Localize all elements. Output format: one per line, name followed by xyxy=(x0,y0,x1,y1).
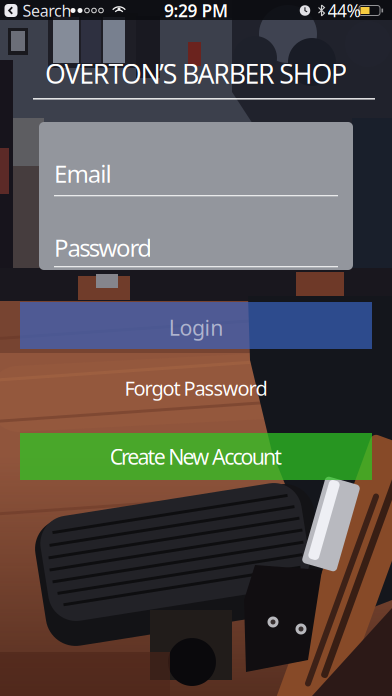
staticText: Search xyxy=(22,0,71,21)
button[interactable]: Create New Account xyxy=(20,433,372,480)
button[interactable]: Login xyxy=(20,302,372,349)
staticText: OVERTON’S BARBER SHOP xyxy=(45,56,347,91)
staticText: Forgot Password xyxy=(124,375,267,401)
button[interactable]: Forgot Password xyxy=(124,375,267,401)
staticText: 44% xyxy=(327,0,360,22)
staticText: Email xyxy=(54,158,112,189)
staticText: Create New Account xyxy=(110,442,282,471)
staticText: Login xyxy=(169,313,223,342)
button[interactable]: Password xyxy=(54,222,338,272)
button[interactable]: Email xyxy=(54,148,338,198)
staticText: 9:29 PM xyxy=(164,0,228,22)
button[interactable]: Back to Search xyxy=(4,0,71,21)
staticText: Password xyxy=(54,232,152,263)
